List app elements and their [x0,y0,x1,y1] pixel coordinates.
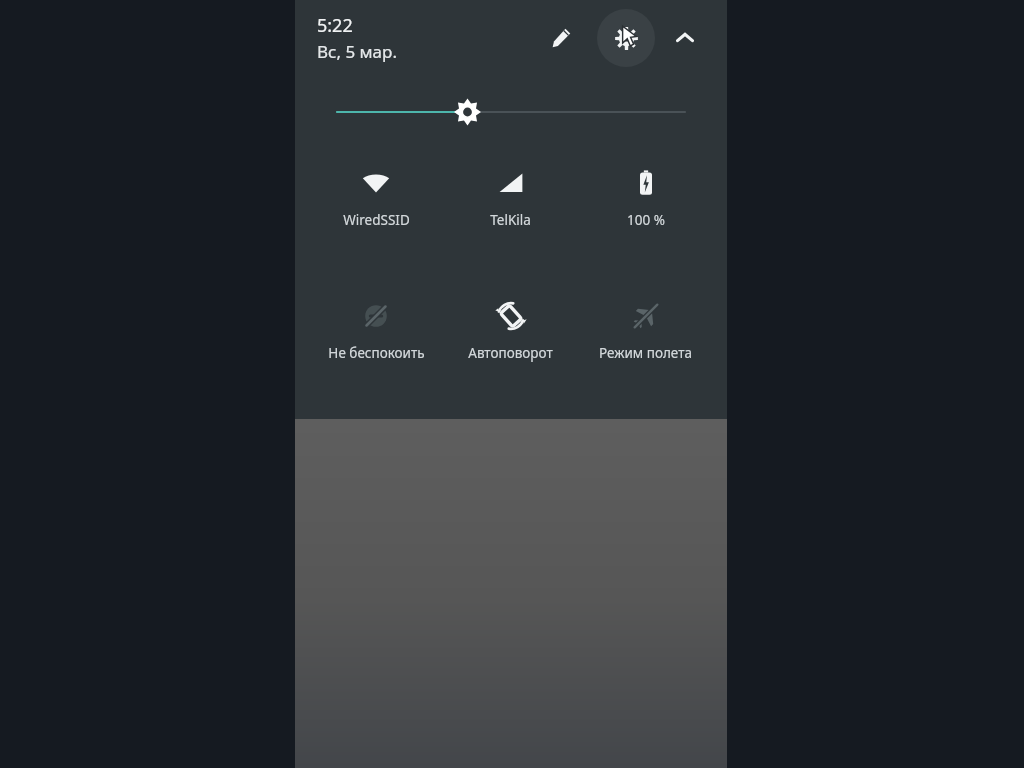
staticText: TelKila [490,211,531,229]
staticText: Режим полета [599,344,692,362]
button[interactable]: Не беспокоить [309,295,443,368]
staticText: Не беспокоить [328,344,425,362]
button[interactable]: 100 % [578,162,713,235]
button[interactable]: Режим полета [578,295,713,368]
staticText: Вс, 5 мар. [317,40,397,63]
button[interactable]: WiredSSID [309,162,443,235]
button[interactable]: TelKila [443,162,578,235]
staticText: Автоповорот [468,344,553,362]
staticText: 5:22 [317,13,353,38]
button[interactable]: Автоповорот [443,295,578,368]
button[interactable]: Settings [597,9,655,67]
staticText: 100 % [627,211,665,229]
staticText: WiredSSID [343,211,410,229]
button[interactable]: Collapse [663,16,707,60]
button[interactable]: Brightness [337,90,685,134]
staticText: Ничего нет [460,184,563,210]
button[interactable]: Edit tiles [539,16,583,60]
button[interactable]: 5:22 [317,11,397,65]
